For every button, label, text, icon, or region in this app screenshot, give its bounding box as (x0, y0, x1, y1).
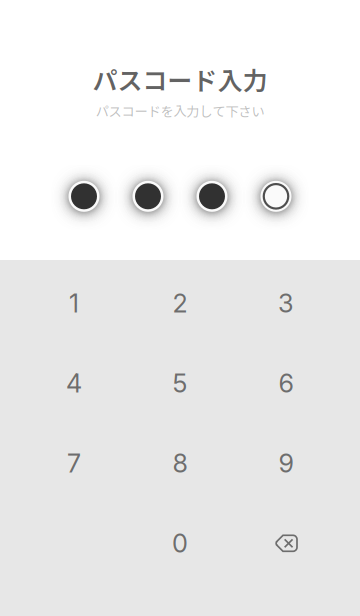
staticText: 4 (66, 368, 82, 399)
staticText: パスコードを入力して下さい (95, 101, 264, 120)
button[interactable]: 3 (233, 263, 339, 343)
button[interactable]: Delete (233, 503, 339, 583)
staticText: 5 (172, 368, 187, 399)
staticText: 2 (172, 288, 187, 319)
button[interactable]: 9 (233, 423, 339, 503)
staticText: 0 (172, 528, 188, 559)
staticText: 6 (278, 368, 293, 399)
button[interactable]: 1 (21, 263, 127, 343)
button[interactable]: 6 (233, 343, 339, 423)
staticText: 7 (67, 448, 81, 479)
staticText: パスコード入力 (92, 61, 267, 97)
button[interactable]: 0 (127, 503, 233, 583)
button[interactable]: 2 (127, 263, 233, 343)
button[interactable]: 4 (21, 343, 127, 423)
button[interactable]: 8 (127, 423, 233, 503)
staticText: 8 (172, 448, 187, 479)
staticText: 9 (278, 448, 293, 479)
button[interactable]: 7 (21, 423, 127, 503)
button[interactable]: 5 (127, 343, 233, 423)
staticText: 1 (69, 288, 79, 319)
staticText: 3 (278, 288, 294, 319)
